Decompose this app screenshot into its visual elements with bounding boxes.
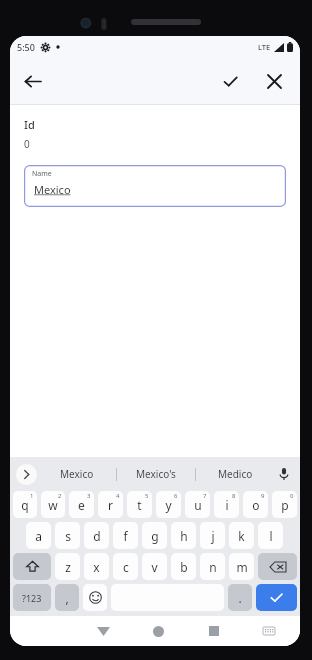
button[interactable]: v	[142, 553, 167, 580]
staticText: 5:50	[17, 41, 35, 53]
button[interactable]: i	[214, 491, 239, 518]
staticText: Mexico	[60, 467, 94, 481]
staticText: p	[281, 497, 289, 513]
button[interactable]: c	[113, 553, 138, 580]
staticText: ?123	[22, 592, 42, 604]
staticText: f	[123, 528, 128, 544]
button[interactable]: x	[84, 553, 109, 580]
staticText: a	[35, 528, 42, 544]
staticText: n	[209, 559, 217, 575]
staticText: 7	[203, 492, 207, 500]
button[interactable]: p	[272, 491, 297, 518]
staticText: q	[21, 497, 29, 513]
staticText: 4	[116, 492, 120, 500]
staticText: y	[165, 497, 172, 513]
button[interactable]: Switch keyboard	[241, 616, 296, 646]
button[interactable]: w	[41, 491, 65, 518]
button[interactable]: n	[200, 553, 225, 580]
staticText: 8	[232, 492, 236, 500]
staticText: h	[180, 528, 188, 544]
staticText: b	[180, 559, 188, 575]
staticText: 2	[58, 492, 62, 500]
button[interactable]: Voice input	[274, 457, 294, 491]
staticText: Name	[32, 169, 52, 179]
staticText: .	[238, 590, 242, 606]
staticText: e	[78, 497, 85, 513]
staticText: 3	[87, 492, 91, 500]
staticText: u	[194, 497, 202, 513]
staticText: o	[252, 497, 260, 513]
button[interactable]: t	[127, 491, 152, 518]
staticText: r	[108, 497, 113, 513]
button[interactable]: Shift	[13, 553, 51, 580]
button[interactable]: Emoji	[83, 584, 107, 611]
button[interactable]: u	[185, 491, 210, 518]
button[interactable]: Save	[208, 59, 252, 103]
staticText: Mexico's	[136, 467, 176, 481]
button[interactable]: Mexico's	[117, 457, 195, 491]
staticText: Medico	[218, 467, 253, 481]
button[interactable]: .	[228, 584, 252, 611]
button[interactable]: o	[243, 491, 268, 518]
button[interactable]: Back	[76, 616, 131, 646]
button[interactable]: l	[258, 522, 283, 549]
staticText: Mexico	[34, 182, 71, 197]
staticText: w	[48, 497, 58, 513]
staticText: l	[269, 528, 273, 544]
button[interactable]: j	[200, 522, 225, 549]
staticText: g	[151, 528, 159, 544]
button[interactable]: s	[55, 522, 80, 549]
button[interactable]: ?123	[13, 584, 51, 611]
staticText: c	[123, 559, 129, 575]
button[interactable]: m	[229, 553, 254, 580]
button[interactable]: y	[156, 491, 181, 518]
staticText: 6	[174, 492, 178, 500]
staticText: i	[225, 497, 229, 513]
button[interactable]: Enter	[256, 584, 297, 611]
staticText: t	[137, 497, 142, 513]
staticText: ,	[65, 590, 69, 606]
button[interactable]: ,	[55, 584, 79, 611]
button[interactable]: k	[229, 522, 254, 549]
button[interactable]: z	[55, 553, 80, 580]
staticText: Id	[24, 117, 35, 132]
staticText: v	[151, 559, 158, 575]
staticText: m	[236, 559, 248, 575]
button[interactable]: e	[69, 491, 94, 518]
button[interactable]: a	[26, 522, 51, 549]
staticText: k	[238, 528, 245, 544]
button[interactable]: Name	[24, 165, 286, 207]
button[interactable]: b	[171, 553, 196, 580]
staticText: LTE	[258, 42, 271, 52]
staticText: 1	[30, 492, 34, 500]
button[interactable]: r	[98, 491, 123, 518]
button[interactable]: d	[84, 522, 109, 549]
staticText: z	[65, 559, 71, 575]
button[interactable]: g	[142, 522, 167, 549]
staticText: 5	[145, 492, 149, 500]
staticText: s	[65, 528, 71, 544]
button[interactable]: Back	[10, 59, 54, 103]
button[interactable]: Home	[131, 616, 186, 646]
button[interactable]: q	[13, 491, 37, 518]
staticText: x	[93, 559, 100, 575]
staticText: 0	[24, 137, 30, 151]
button[interactable]: More suggestions	[16, 464, 37, 485]
button[interactable]: Recents	[186, 616, 241, 646]
staticText: j	[211, 528, 215, 544]
staticText: 0	[290, 492, 294, 500]
button[interactable]: Medico	[196, 457, 274, 491]
staticText: d	[93, 528, 101, 544]
button[interactable]: Close	[252, 59, 296, 103]
button[interactable]: Mexico	[37, 457, 116, 491]
button[interactable]: f	[113, 522, 138, 549]
button[interactable]: h	[171, 522, 196, 549]
staticText: 9	[261, 492, 265, 500]
button[interactable]: Backspace	[258, 553, 297, 580]
